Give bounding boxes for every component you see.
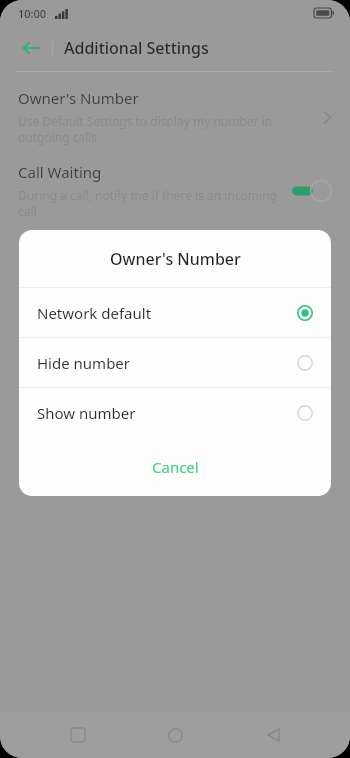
staticText: Owner's Number <box>110 248 241 270</box>
button[interactable]: Owner's Number <box>0 88 350 146</box>
staticText: Use Default Settings to display my numbe… <box>18 113 315 146</box>
button[interactable]: Recents <box>58 715 98 755</box>
button[interactable]: Home <box>155 715 195 755</box>
staticText: Call Waiting <box>18 162 102 182</box>
staticText: 10:00 <box>18 6 47 21</box>
staticText: Additional Settings <box>64 37 209 59</box>
staticText: Hide number <box>37 353 297 373</box>
staticText: During a call, notify me if there is an … <box>18 187 284 220</box>
button[interactable]: Cancel <box>19 437 331 496</box>
button[interactable]: Hide number <box>19 338 331 387</box>
button[interactable]: Call Waiting <box>0 162 350 220</box>
button[interactable]: Call Waiting toggle <box>292 180 332 202</box>
button[interactable]: Show number <box>19 388 331 437</box>
button[interactable]: Back <box>18 35 44 61</box>
button[interactable]: Back <box>253 715 293 755</box>
staticText: Owner's Number <box>18 88 139 108</box>
button[interactable]: Network default <box>19 288 331 337</box>
staticText: Cancel <box>152 457 199 477</box>
staticText: Network default <box>37 303 297 323</box>
staticText: Show number <box>37 403 297 423</box>
